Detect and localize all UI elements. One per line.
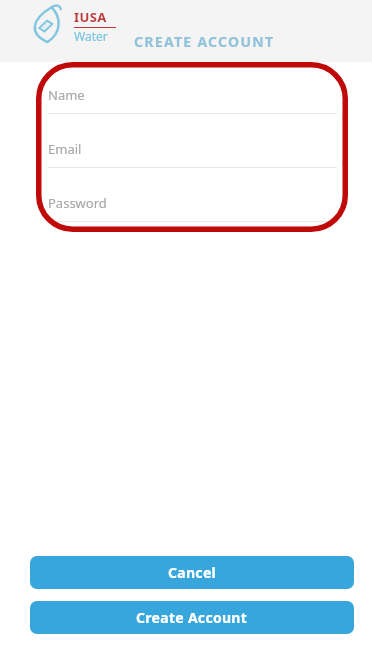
button[interactable]: Email [48,140,337,168]
staticText: Email [48,140,82,158]
staticText: Create Account [136,608,248,627]
staticText: IUSA [74,8,107,26]
button[interactable]: Cancel [30,556,354,589]
staticText: Name [48,86,85,104]
staticText: CREATE ACCOUNT [134,32,275,51]
other: IUSA Water logo [26,3,70,45]
button[interactable]: Create Account [30,601,354,634]
staticText: Password [48,194,107,212]
staticText: Cancel [168,563,217,582]
button[interactable]: Password [48,194,337,222]
staticText: Water [74,28,108,44]
button[interactable]: Name [48,86,337,114]
